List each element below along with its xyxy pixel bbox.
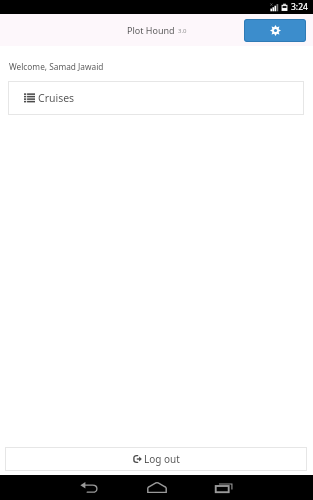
staticText: 3:24 <box>291 1 308 13</box>
staticText: 3.0 <box>178 27 187 35</box>
button[interactable]: Settings <box>244 19 306 42</box>
button[interactable]: Back <box>72 475 106 500</box>
staticText: Plot Hound <box>127 24 175 36</box>
staticText: Log out <box>144 452 180 466</box>
staticText: Welcome, Samad Jawaid <box>9 61 104 72</box>
button[interactable]: Log out <box>5 447 307 471</box>
button[interactable]: Recents <box>207 475 241 500</box>
button[interactable]: Home <box>140 475 174 500</box>
button[interactable]: Cruises <box>8 81 304 115</box>
staticText: Cruises <box>38 91 75 105</box>
